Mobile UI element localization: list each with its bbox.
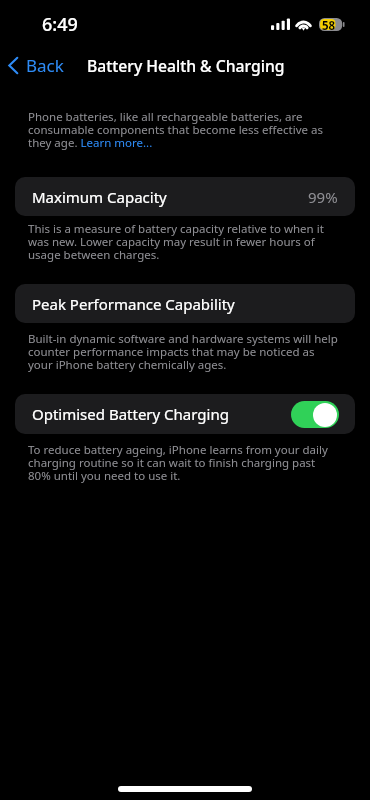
button[interactable]: Back (6, 52, 68, 79)
staticText: 58 (322, 18, 336, 31)
button[interactable]: Optimised Battery Charging (291, 401, 339, 428)
staticText: This is a measure of battery capacity re… (28, 221, 339, 263)
staticText: Peak Performance Capability (32, 294, 235, 314)
staticText: Built-in dynamic software and hardware s… (28, 331, 339, 373)
staticText: Phone batteries, like all rechargeable b… (28, 109, 339, 151)
staticText: Maximum Capacity (32, 187, 167, 207)
staticText: 6:49 (42, 12, 78, 37)
staticText: To reduce battery ageing, iPhone learns … (28, 442, 339, 484)
staticText: Optimised Battery Charging (32, 404, 229, 424)
button[interactable]: Maximum Capacity (15, 177, 355, 216)
button[interactable]: Peak Performance Capability (15, 284, 355, 323)
button[interactable]: Learn more about battery health (81, 137, 153, 152)
button[interactable]: Optimised Battery Charging (15, 394, 355, 434)
staticText: 99% (308, 187, 338, 207)
staticText: Battery Health & Charging (87, 55, 285, 76)
staticText: Back (26, 54, 64, 77)
